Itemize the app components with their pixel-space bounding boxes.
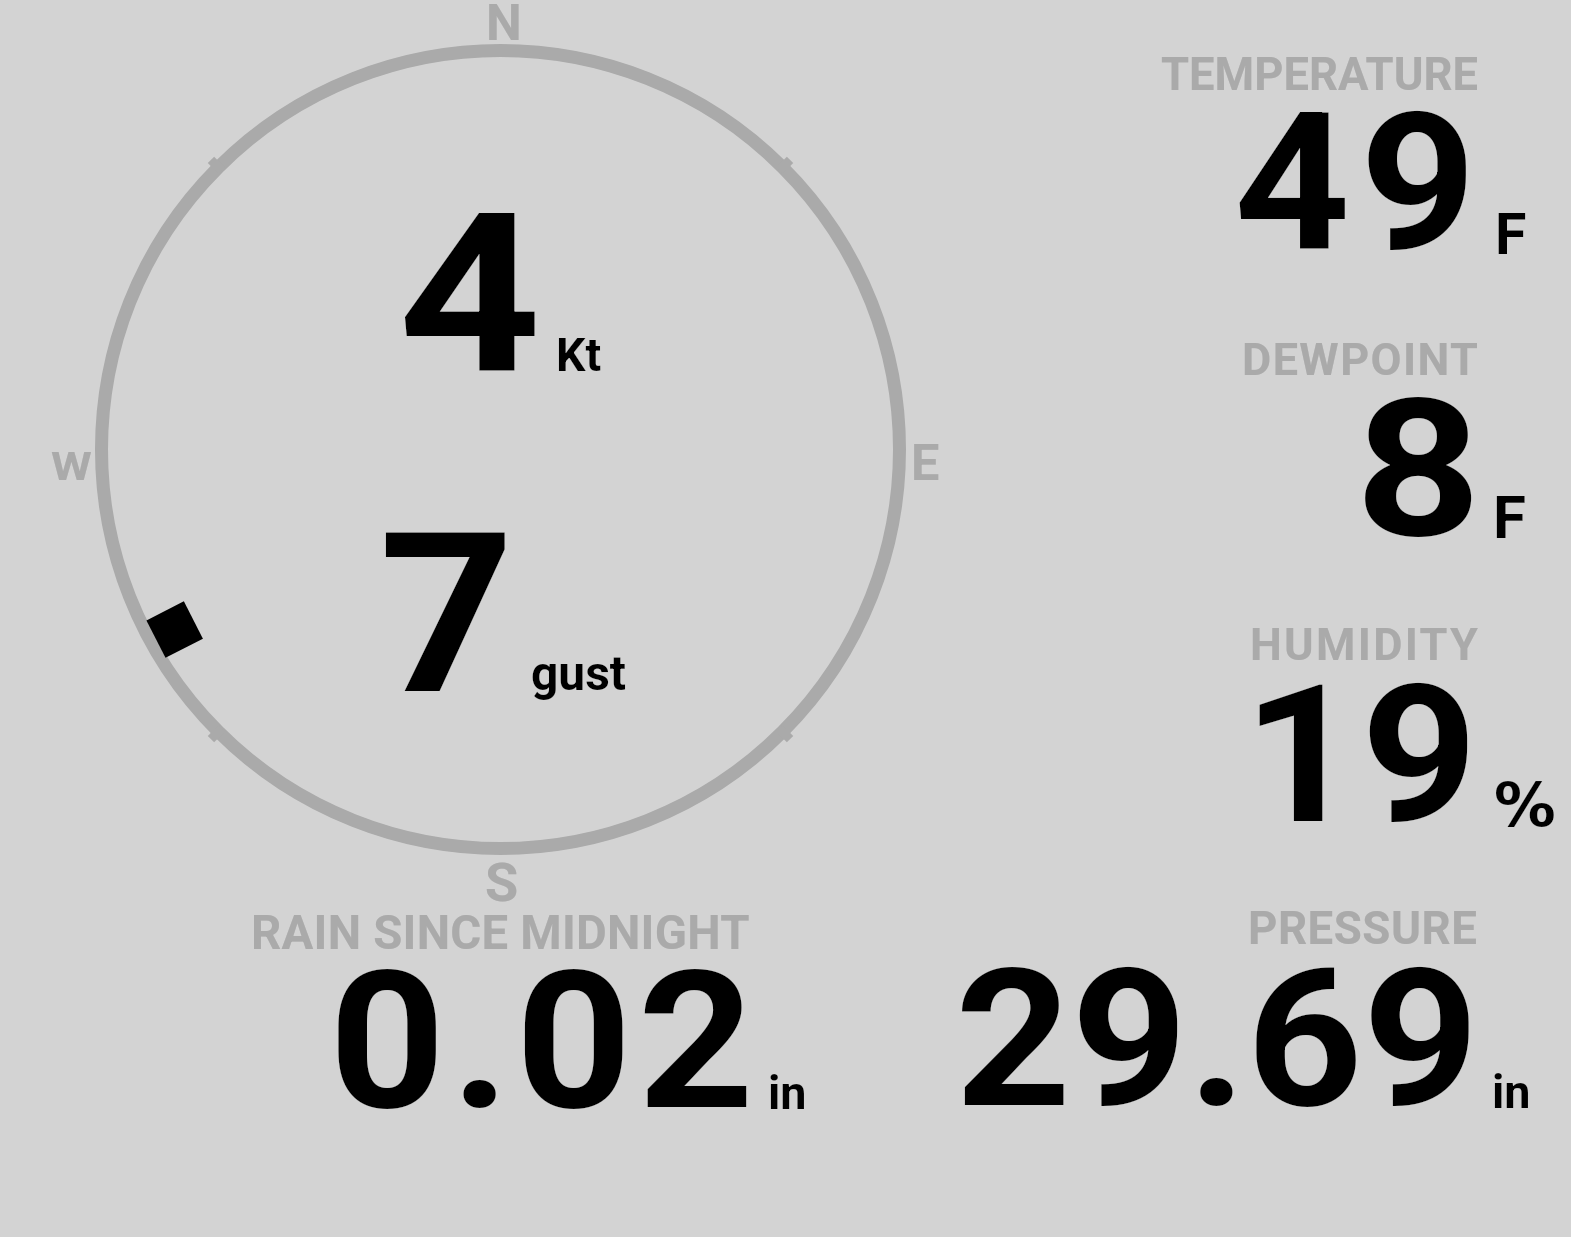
button[interactable]: Wind 4 knots gusting 7, direction west s… [40,0,960,905]
staticText: 7 [379,484,515,745]
staticText: 8 [1355,358,1481,582]
staticText: RAIN SINCE MIDNIGHT [251,905,750,960]
staticText: 19 [1243,644,1480,868]
staticText: E [911,433,940,492]
staticText: F [1495,201,1527,268]
staticText: F [1493,482,1526,552]
staticText: TEMPERATURE [1161,48,1479,101]
button[interactable]: Temperature 49 degrees Fahrenheit [1000,10,1571,280]
staticText: 49 [1234,72,1486,296]
staticText: 0.02 [329,930,760,1154]
staticText: DEWPOINT [1242,333,1480,386]
button[interactable]: Rain since midnight 0.02 inches [120,900,880,1130]
staticText: PRESSURE [1248,902,1478,955]
staticText: % [1494,770,1556,840]
staticText: Kt [556,328,602,382]
staticText: in [768,1066,807,1121]
button[interactable]: Dewpoint 8 degrees Fahrenheit [1000,296,1571,566]
staticText: 29.69 [955,928,1480,1152]
staticText: 4 [398,165,541,424]
staticText: W [51,444,92,489]
staticText: HUMIDITY [1250,618,1481,671]
button[interactable]: Humidity 19 percent [1000,582,1571,852]
staticText: in [1492,1065,1531,1120]
staticText: N [486,0,522,52]
button[interactable]: Pressure 29.69 inches [900,900,1571,1130]
staticText: gust [531,646,626,702]
staticText: S [485,851,519,914]
